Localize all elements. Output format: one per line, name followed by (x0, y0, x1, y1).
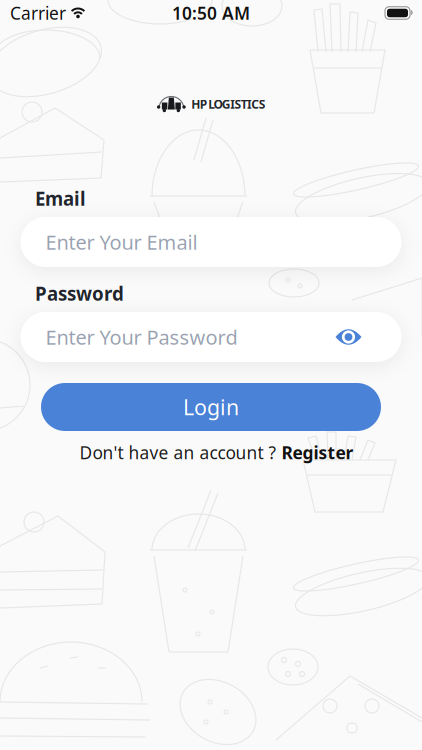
staticText: Enter Your Password (45, 324, 237, 350)
button[interactable]: Enter Your Password (20, 312, 401, 362)
staticText: Don't have an account ? (79, 441, 281, 464)
staticText: Password (35, 281, 124, 306)
button[interactable]: Login (41, 383, 381, 431)
staticText: Login (183, 393, 239, 421)
staticText: Register (281, 441, 353, 464)
button[interactable]: Register (281, 441, 353, 464)
button[interactable]: Enter Your Email (20, 217, 401, 267)
staticText: Email (35, 186, 86, 211)
staticText: Carrier (10, 1, 66, 24)
staticText: HP LOGISTICS (191, 96, 266, 112)
staticText: 10:50 AM (172, 1, 250, 24)
staticText: Enter Your Email (45, 229, 197, 255)
